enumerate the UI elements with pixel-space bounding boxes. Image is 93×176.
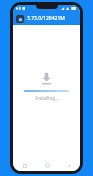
staticText: Installing... — [35, 95, 59, 101]
button[interactable]: App icon — [16, 15, 24, 23]
staticText: 3.73.0/120421M — [27, 15, 65, 22]
button[interactable]: Recents — [13, 160, 36, 171]
button[interactable]: Home — [36, 160, 58, 171]
button[interactable]: Back — [58, 160, 80, 171]
